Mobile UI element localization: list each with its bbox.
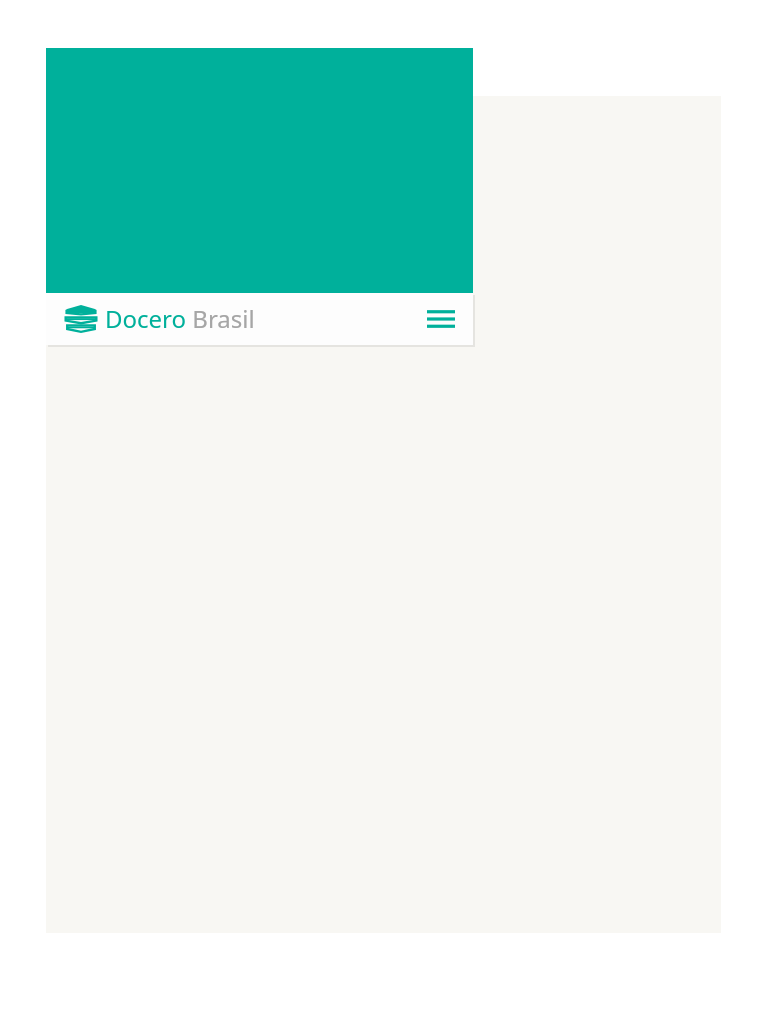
staticText: Docero Brasil bbox=[105, 302, 255, 335]
button[interactable]: Docero Brasil bbox=[58, 293, 242, 345]
button[interactable]: Menu bbox=[417, 295, 465, 343]
